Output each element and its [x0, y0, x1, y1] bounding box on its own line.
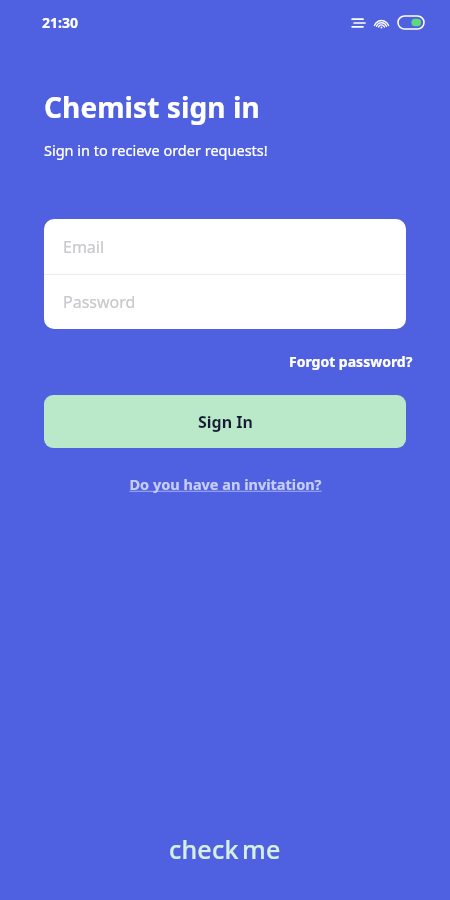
- staticText: check: [169, 832, 239, 866]
- button[interactable]: Email: [44, 219, 406, 274]
- button[interactable]: Sign In: [44, 395, 406, 448]
- staticText: Sign In: [198, 411, 253, 433]
- staticText: Email: [63, 236, 105, 258]
- button[interactable]: Do you have an invitation?: [125, 471, 326, 497]
- staticText: Chemist sign in: [44, 88, 260, 126]
- staticText: Password: [63, 291, 136, 313]
- button[interactable]: Forgot password?: [287, 349, 415, 374]
- staticText: Forgot password?: [289, 352, 413, 371]
- staticText: me: [242, 832, 281, 866]
- button[interactable]: Password: [44, 275, 406, 329]
- staticText: 21:30: [42, 13, 78, 32]
- staticText: Do you have an invitation?: [129, 474, 322, 494]
- staticText: Sign in to recieve order requests!: [44, 140, 268, 160]
